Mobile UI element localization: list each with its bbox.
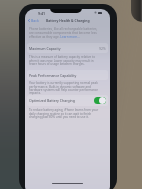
staticText: Peak Performance Capability bbox=[29, 73, 106, 78]
other: Optimized Battery Charging toggle bbox=[94, 97, 106, 104]
staticText: 92% bbox=[99, 46, 106, 51]
staticText: Phone batteries, like all rechargeable b… bbox=[29, 27, 100, 39]
staticText: Back bbox=[31, 18, 39, 23]
staticText: To reduce battery aging, iPhone learns f… bbox=[29, 108, 100, 119]
staticText: Battery Health & Charging bbox=[46, 18, 90, 23]
staticText: Optimized Battery Charging bbox=[29, 98, 94, 103]
button[interactable]: Maximum Capacity bbox=[27, 43, 108, 53]
button[interactable]: Back bbox=[27, 17, 40, 24]
staticText: Maximum Capacity bbox=[29, 46, 99, 51]
staticText: This is a measure of battery capacity re… bbox=[29, 55, 100, 66]
button[interactable]: Peak Performance Capability bbox=[27, 70, 108, 80]
staticText: 9:41 bbox=[38, 11, 46, 16]
button[interactable]: Optimized Battery Charging bbox=[27, 95, 108, 106]
staticText: Your battery is currently supporting nor… bbox=[29, 81, 100, 95]
